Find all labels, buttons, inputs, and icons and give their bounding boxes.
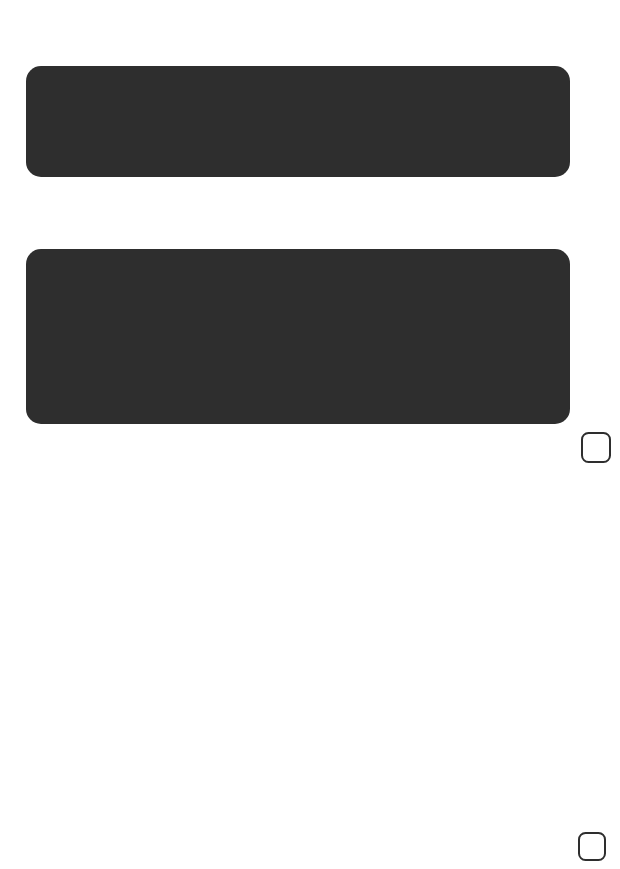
button[interactable]: Action <box>581 432 611 463</box>
button[interactable]: Action <box>578 832 606 861</box>
button[interactable]: Card <box>26 249 570 424</box>
button[interactable]: Card <box>26 66 570 177</box>
